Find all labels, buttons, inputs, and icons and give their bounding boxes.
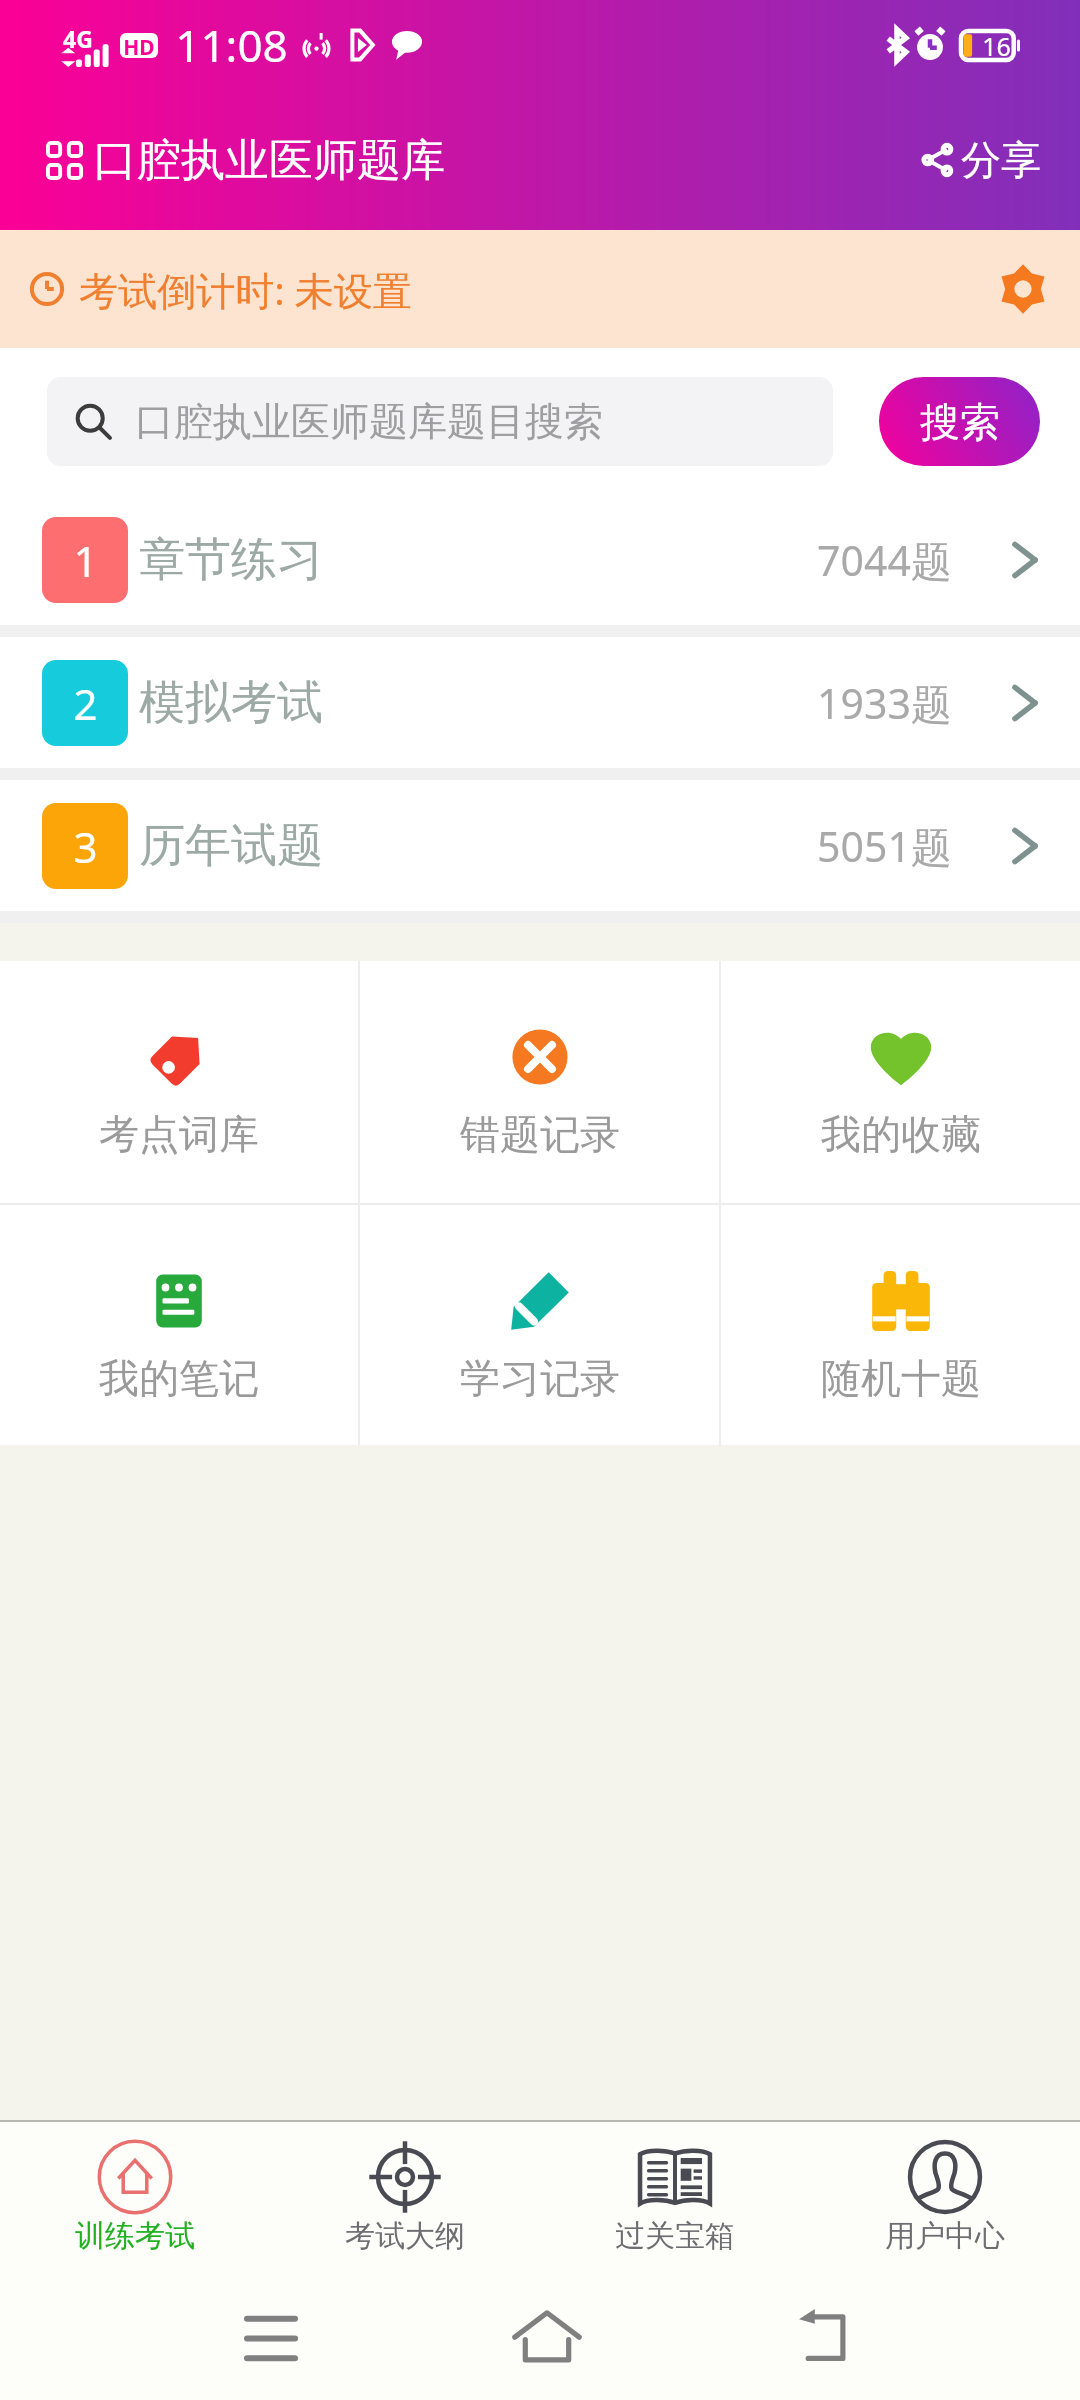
staticText: 历年试题 [139,817,323,875]
staticText: 搜索 [920,397,1000,447]
button[interactable]: 错题记录 [360,961,719,1203]
button[interactable]: 1 [0,494,1080,625]
button[interactable]: Home [512,2307,582,2365]
button[interactable]: 随机十题 [721,1205,1080,1445]
staticText: 11:08 [175,15,288,75]
staticText: 7044题 [817,532,952,588]
staticText: 考试大纲 [345,2217,465,2255]
button[interactable]: 过关宝箱 [540,2122,810,2277]
staticText: 4G [63,23,93,54]
staticText: 用户中心 [885,2217,1005,2255]
button[interactable]: 搜索 [879,377,1040,466]
button[interactable]: 2 [0,637,1080,768]
staticText: 口腔执业医师题库 [93,133,445,188]
staticText: 训练考试 [75,2217,195,2255]
staticText: 考点词库 [99,1109,259,1159]
staticText: 过关宝箱 [615,2217,735,2255]
staticText: 随机十题 [821,1353,981,1403]
button[interactable]: 训练考试 [0,2122,270,2277]
staticText: 口腔执业医师题库题目搜索 [135,397,603,446]
staticText: 我的笔记 [99,1353,259,1403]
staticText: 1 [73,532,98,589]
staticText: 2 [73,675,98,732]
staticText: 考试倒计时: 未设置 [79,263,412,316]
button[interactable]: 考试大纲 [270,2122,540,2277]
staticText: 16 [982,29,1011,62]
button[interactable]: 口腔执业医师题库题目搜索 [47,377,833,466]
staticText: HD [123,33,155,58]
staticText: 错题记录 [460,1109,620,1159]
staticText: 1933题 [817,675,952,731]
button[interactable]: Recent apps [246,2315,296,2362]
button[interactable]: 用户中心 [810,2122,1080,2277]
staticText: 3 [73,818,98,875]
button[interactable]: 学习记录 [360,1205,719,1445]
staticText: 模拟考试 [139,674,323,732]
button[interactable]: 3 [0,780,1080,911]
button[interactable]: 考点词库 [0,961,358,1203]
staticText: 章节练习 [139,531,323,589]
staticText: 5051题 [817,818,952,874]
button[interactable]: Settings [996,262,1050,316]
button[interactable]: 分享 [922,125,1041,195]
staticText: 分享 [961,135,1041,185]
button[interactable]: 考试倒计时: 未设置 [0,230,1080,348]
button[interactable]: 我的收藏 [721,961,1080,1203]
staticText: 我的收藏 [821,1109,981,1159]
staticText: 学习记录 [460,1353,620,1403]
button[interactable]: 我的笔记 [0,1205,358,1445]
button[interactable]: Back [798,2308,849,2364]
